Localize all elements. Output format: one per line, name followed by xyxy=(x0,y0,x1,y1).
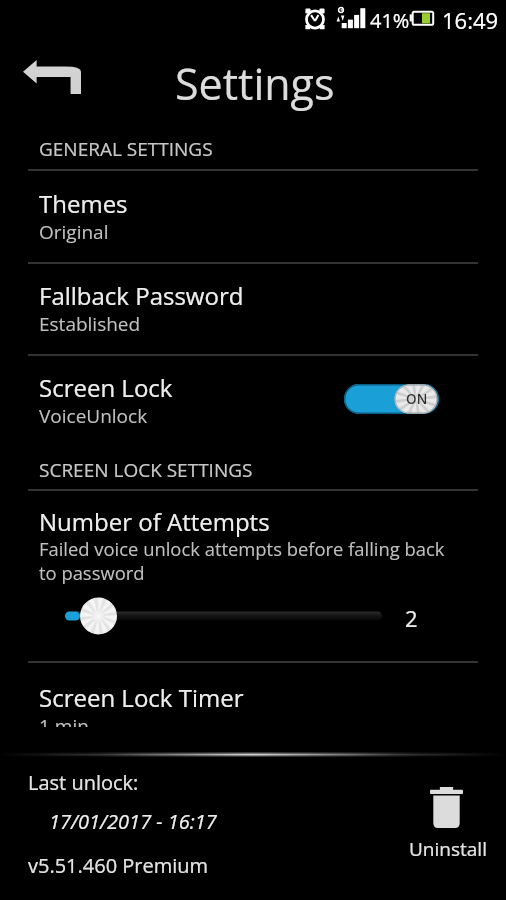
staticText: 1 min xyxy=(39,713,89,739)
staticText: Number of Attempts xyxy=(39,505,270,538)
staticText: Failed voice unlock attempts before fall… xyxy=(39,536,445,585)
staticText: Uninstall xyxy=(409,836,487,862)
staticText: Original xyxy=(39,219,109,245)
staticText: SCREEN LOCK SETTINGS xyxy=(39,457,253,483)
button[interactable]: Uninstall xyxy=(392,778,498,864)
staticText: 41% xyxy=(370,7,410,34)
staticText: 2 xyxy=(405,603,418,633)
staticText: 16:49 xyxy=(442,5,499,35)
staticText: ON xyxy=(406,390,428,408)
button[interactable]: Number of Attempts xyxy=(0,492,506,662)
staticText: Established xyxy=(39,311,141,337)
staticText: Themes xyxy=(39,187,128,220)
button[interactable]: Themes xyxy=(0,172,506,262)
staticText: Screen Lock xyxy=(39,371,173,404)
staticText: GENERAL SETTINGS xyxy=(39,136,213,162)
button[interactable]: Screen Lock toggle, on xyxy=(344,384,439,414)
staticText: Last unlock: xyxy=(28,769,139,796)
staticText: Fallback Password xyxy=(39,279,244,312)
button[interactable]: Screen Lock Timer xyxy=(0,664,506,727)
button[interactable]: Back xyxy=(6,50,96,102)
staticText: Settings xyxy=(175,54,335,113)
button[interactable]: Fallback Password xyxy=(0,265,506,354)
staticText: VoiceUnlock xyxy=(39,403,148,429)
staticText: 17/01/2017 - 16:17 xyxy=(49,808,217,835)
staticText: Screen Lock Timer xyxy=(39,681,244,714)
button[interactable]: Screen Lock xyxy=(0,356,506,444)
staticText: v5.51.460 Premium xyxy=(28,852,209,879)
